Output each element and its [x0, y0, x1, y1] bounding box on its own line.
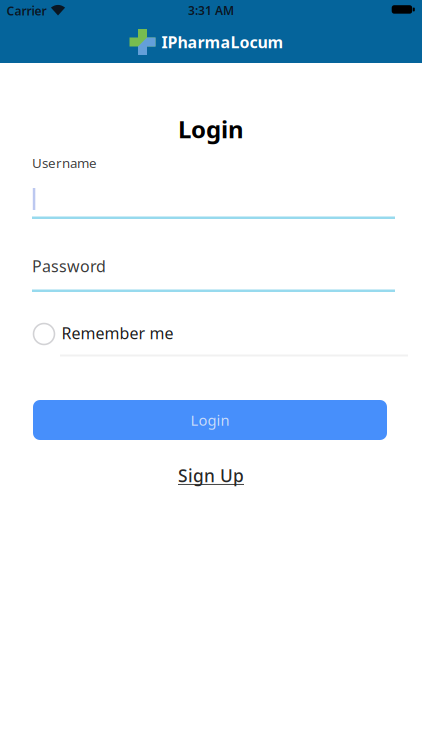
staticText: Password — [32, 255, 106, 277]
button[interactable]: Username — [32, 157, 395, 219]
button[interactable]: Remember me — [33, 322, 173, 346]
button[interactable]: Login — [33, 400, 387, 440]
staticText: IPharmaLocum — [161, 31, 283, 53]
staticText: Sign Up — [178, 464, 244, 487]
staticText: Username — [32, 154, 97, 172]
staticText: 3:31 AM — [188, 2, 234, 18]
staticText: Carrier — [6, 3, 46, 19]
button[interactable]: Sign Up — [178, 464, 244, 487]
staticText: Login — [178, 113, 244, 145]
staticText: Remember me — [61, 322, 173, 344]
button[interactable]: Password — [32, 258, 395, 292]
staticText: Login — [190, 410, 229, 430]
